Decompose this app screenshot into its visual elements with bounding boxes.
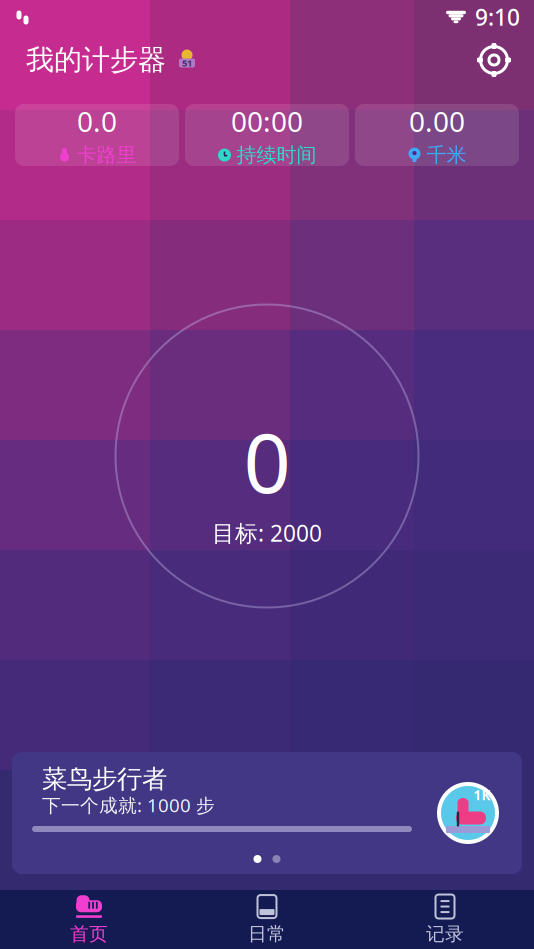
staticText: 我的计步器: [26, 43, 166, 77]
button[interactable]: 记录: [356, 890, 534, 949]
button[interactable]: 0.0: [15, 104, 179, 166]
button[interactable]: 00:00: [185, 104, 349, 166]
staticText: 00:00: [231, 103, 303, 140]
staticText: 0.0: [77, 103, 117, 140]
button[interactable]: 首页: [0, 890, 178, 949]
staticText: 千米: [426, 143, 466, 167]
button[interactable]: 0.00: [355, 104, 519, 166]
staticText: 0: [243, 406, 290, 516]
button[interactable]: Settings: [470, 36, 518, 84]
staticText: 目标: 2000: [212, 518, 322, 548]
staticText: 卡路里: [76, 143, 136, 167]
staticText: 首页: [70, 922, 108, 945]
staticText: 1K: [473, 786, 490, 804]
staticText: 日常: [248, 922, 286, 945]
button[interactable]: 日常: [178, 890, 356, 949]
staticText: 记录: [426, 922, 464, 945]
staticText: 下一个成就: 1000 步: [42, 793, 215, 817]
staticText: 持续时间: [236, 143, 316, 167]
staticText: 0.00: [409, 103, 465, 140]
button[interactable]: 菜鸟步行者: [12, 752, 522, 874]
staticText: 菜鸟步行者: [42, 763, 167, 794]
staticText: 9:10: [475, 2, 520, 32]
staticText: 51: [182, 57, 192, 69]
